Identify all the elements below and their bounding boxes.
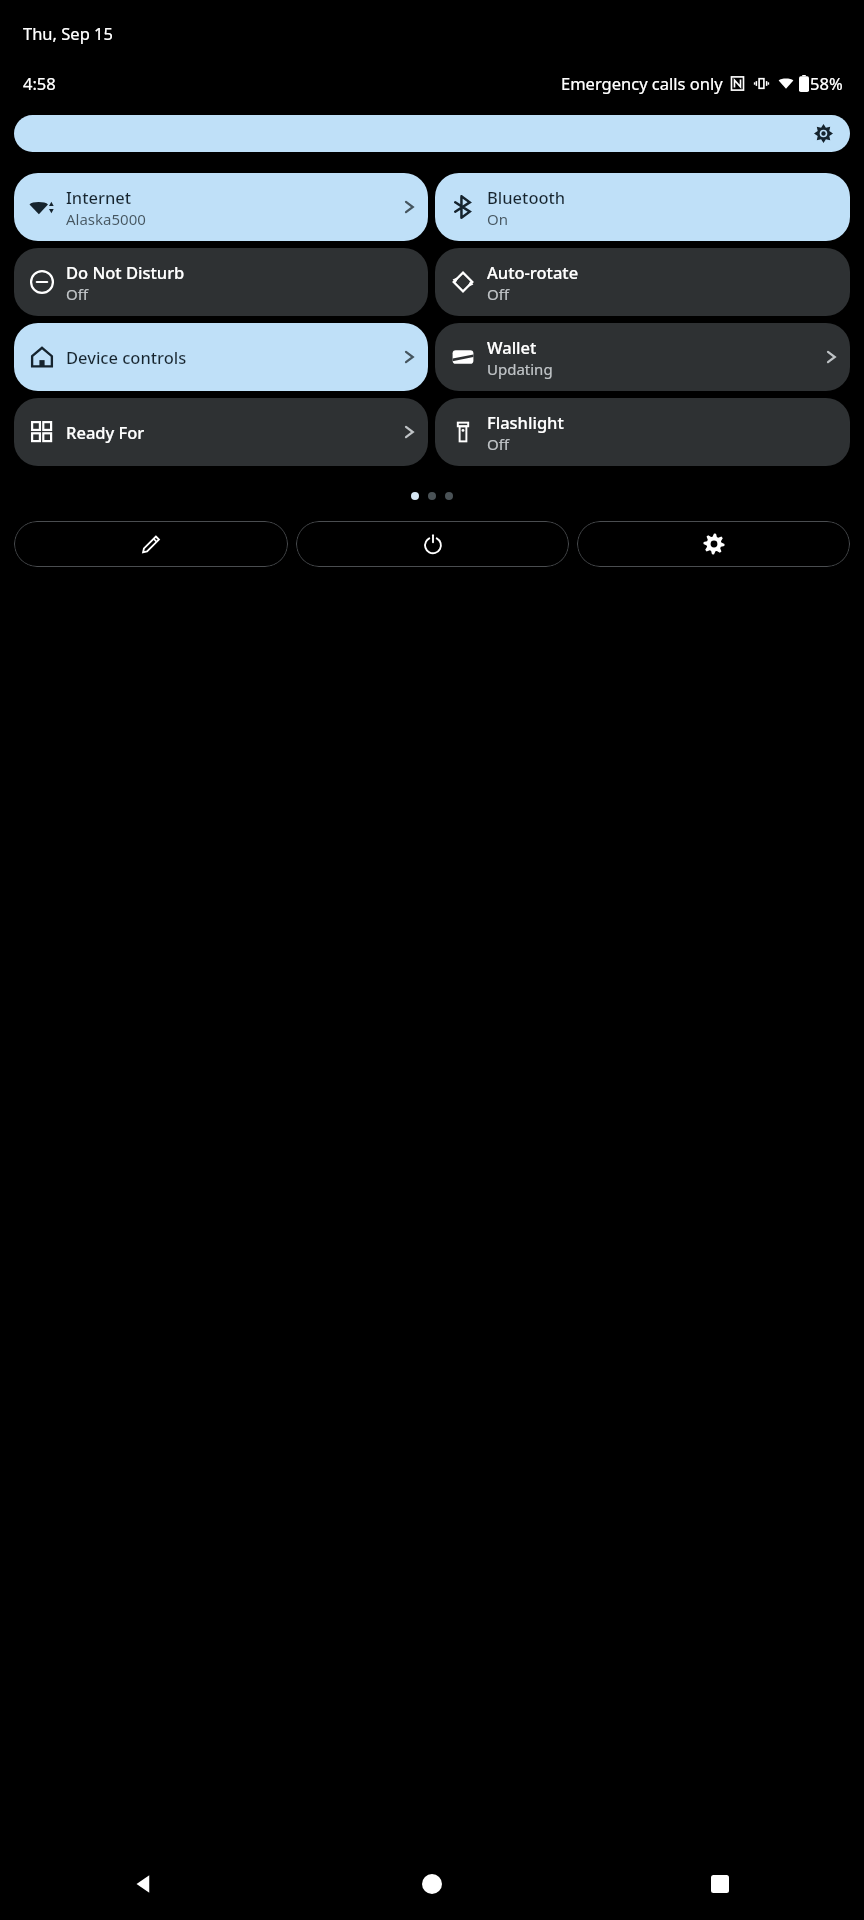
button[interactable]: Home [288, 1848, 576, 1920]
staticText: Internet [66, 186, 132, 208]
staticText: Ready For [66, 421, 145, 443]
staticText: Alaska5000 [66, 209, 146, 229]
staticText: Wallet [487, 336, 537, 358]
button[interactable]: Wallet [435, 323, 850, 391]
button[interactable]: Ready For [14, 398, 428, 466]
staticText: 58% [810, 72, 843, 94]
staticText: Do Not Disturb [66, 261, 185, 283]
button[interactable]: Brightness [14, 115, 850, 152]
staticText: Auto-rotate [487, 261, 579, 283]
staticText: Thu, Sep 15 [23, 22, 113, 44]
staticText: Emergency calls only [561, 72, 723, 94]
staticText: Flashlight [487, 411, 564, 433]
staticText: Off [487, 434, 510, 454]
button[interactable]: Device controls [14, 323, 428, 391]
button[interactable]: Internet [14, 173, 428, 241]
button[interactable]: Do Not Disturb [14, 248, 428, 316]
staticText: On [487, 209, 508, 229]
button[interactable]: Edit [14, 521, 288, 567]
button[interactable]: Flashlight [435, 398, 850, 466]
staticText: Off [487, 284, 510, 304]
staticText: Updating [487, 359, 553, 379]
button[interactable]: Back [0, 1848, 288, 1920]
button[interactable]: Bluetooth [435, 173, 850, 241]
button[interactable]: Auto-rotate [435, 248, 850, 316]
button[interactable]: Settings [577, 521, 850, 567]
staticText: Bluetooth [487, 186, 566, 208]
button[interactable]: Recent apps [576, 1848, 864, 1920]
button[interactable]: Power [296, 521, 569, 567]
staticText: Off [66, 284, 89, 304]
staticText: 4:58 [23, 72, 56, 94]
staticText: Device controls [66, 346, 187, 368]
